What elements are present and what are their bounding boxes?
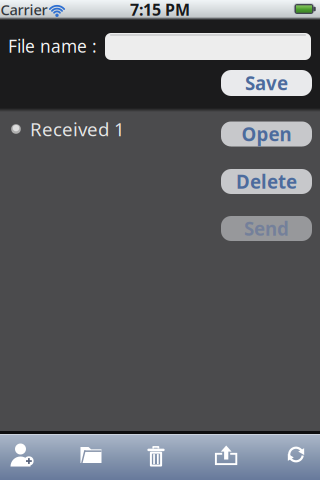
staticText: Delete	[236, 169, 297, 194]
button[interactable]: Open folder	[66, 435, 116, 475]
staticText: Carrier	[0, 0, 47, 19]
button[interactable]: Delete	[131, 435, 181, 475]
button[interactable]: Save	[221, 70, 312, 96]
staticText: Send	[244, 216, 289, 241]
button[interactable]: Send	[221, 216, 312, 241]
staticText: 7:15 PM	[130, 0, 190, 20]
staticText: File name :	[8, 34, 97, 57]
staticText: Received 1	[30, 117, 125, 141]
staticText: Open	[241, 122, 291, 146]
button[interactable]: File name	[105, 33, 311, 60]
staticText: Save	[245, 71, 288, 95]
button[interactable]: Delete	[221, 169, 312, 194]
button[interactable]: Refresh	[271, 434, 320, 474]
button[interactable]: Open	[221, 121, 312, 146]
button[interactable]: Upload	[201, 435, 251, 475]
button[interactable]: Add contact	[0, 435, 46, 475]
